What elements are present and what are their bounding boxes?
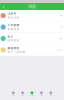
- staticText: 消息: [28, 4, 36, 9]
- button[interactable]: 消息: [27, 88, 37, 100]
- button[interactable]: Back: [0, 3, 7, 10]
- staticText: 星期一: [59, 38, 62, 39]
- staticText: 有新消息: [7, 27, 19, 31]
- staticText: 来自订阅: [7, 16, 19, 19]
- button[interactable]: 通知: [37, 88, 46, 100]
- staticText: 消息: [31, 95, 33, 97]
- button[interactable]: 家庭群组: [0, 44, 64, 55]
- staticText: 工作群聊: [7, 23, 19, 27]
- staticText: 张三: [7, 35, 13, 38]
- button[interactable]: 张三: [0, 33, 64, 44]
- staticText: 昨天: [60, 26, 62, 28]
- staticText: 通知: [40, 95, 42, 97]
- staticText: 订阅号: [7, 12, 16, 15]
- staticText: ‹: [2, 3, 4, 10]
- staticText: 好的收到: [7, 39, 19, 42]
- button[interactable]: 订阅号: [0, 10, 64, 21]
- staticText: 我的: [50, 95, 52, 97]
- button[interactable]: 工作群聊: [0, 21, 64, 33]
- button[interactable]: 发现: [18, 88, 27, 100]
- staticText: 发现: [22, 95, 24, 97]
- button[interactable]: 我的: [46, 88, 55, 100]
- staticText: 晚上一起吃饭: [7, 50, 25, 53]
- staticText: 2023/9/1: [56, 49, 62, 51]
- staticText: 首页: [12, 95, 14, 97]
- staticText: 家庭群组: [7, 46, 19, 50]
- button[interactable]: 首页: [8, 88, 18, 100]
